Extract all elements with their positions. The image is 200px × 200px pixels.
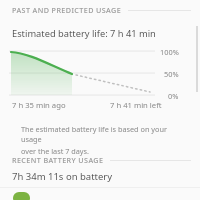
other: App icon bbox=[13, 192, 30, 200]
button[interactable]: App icon bbox=[0, 188, 200, 200]
button[interactable]: 7h 34m 11s on battery bbox=[0, 168, 200, 185]
staticText: 50% bbox=[164, 69, 179, 79]
staticText: RECENT BATTERY USAGE bbox=[12, 155, 104, 165]
staticText: The estimated battery life is based on y… bbox=[21, 124, 181, 144]
staticText: 7h 34m 11s on battery bbox=[12, 170, 113, 183]
staticText: 100% bbox=[160, 47, 179, 57]
staticText: Estimated battery life: 7 h 41 min bbox=[12, 27, 156, 40]
staticText: over the last 7 days. bbox=[21, 146, 89, 156]
staticText: PAST AND PREDICTED USAGE bbox=[12, 5, 122, 15]
staticText: 0% bbox=[168, 91, 179, 101]
staticText: 7 h 41 min left bbox=[110, 100, 162, 110]
staticText: 7 h 35 min ago bbox=[12, 100, 66, 110]
